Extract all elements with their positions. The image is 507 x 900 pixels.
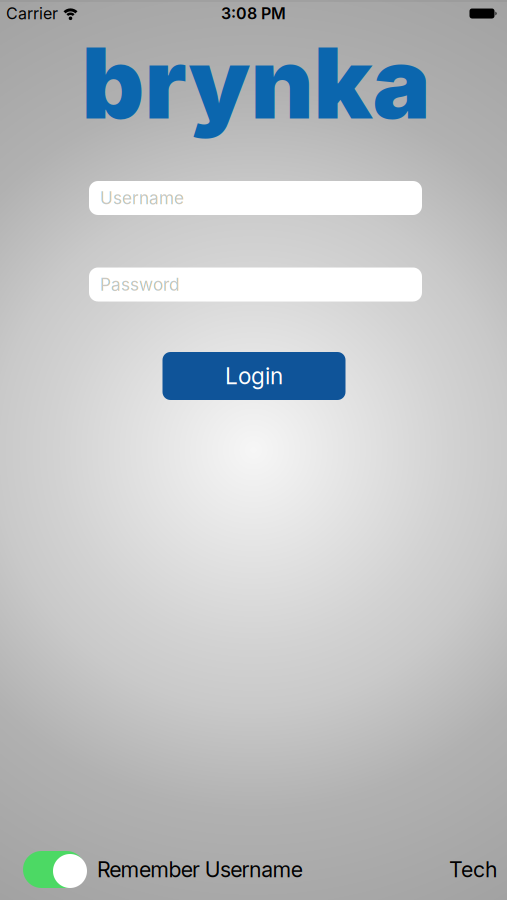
staticText: Password: [100, 274, 180, 295]
button[interactable]: Tech: [449, 857, 498, 882]
staticText: Username: [100, 188, 184, 208]
button[interactable]: Login: [162, 352, 345, 400]
staticText: 3:08 PM: [221, 4, 286, 23]
staticText: brynka: [81, 26, 430, 140]
textField[interactable]: Username: [100, 188, 422, 208]
staticText: Tech: [449, 857, 498, 882]
staticText: Remember Username: [97, 857, 303, 882]
staticText: Login: [225, 363, 283, 389]
textField[interactable]: Password: [100, 274, 422, 295]
staticText: Carrier: [6, 4, 58, 23]
button[interactable]: Remember Username: [23, 851, 85, 888]
